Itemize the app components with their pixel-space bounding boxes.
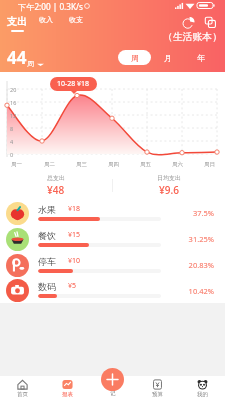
staticText: 总支出: [47, 174, 65, 182]
staticText: ¥18: [68, 204, 81, 214]
button[interactable]: 日均支出: [112, 174, 225, 197]
button[interactable]: 首页: [0, 376, 45, 400]
staticText: 10.42%: [177, 286, 214, 296]
button[interactable]: 收支: [69, 15, 83, 24]
staticText: 周: [27, 59, 34, 68]
staticText: 周三: [76, 161, 87, 168]
staticText: 水果: [38, 204, 56, 215]
staticText: 周一: [11, 161, 22, 168]
staticText: 报表: [62, 391, 73, 398]
staticText: ¥5: [68, 281, 77, 291]
button[interactable]: 餐饮: [0, 226, 225, 252]
staticText: 首页: [17, 391, 28, 398]
staticText: 周日: [204, 161, 215, 168]
button[interactable]: Add record: [101, 368, 124, 391]
staticText: 周: [131, 53, 139, 63]
staticText: 月: [164, 53, 172, 63]
staticText: 31.25%: [177, 234, 214, 244]
staticText: 0: [10, 151, 14, 158]
staticText: 44: [7, 46, 27, 69]
button[interactable]: 我的: [180, 376, 225, 400]
staticText: ¥10: [68, 256, 81, 266]
staticText: 下午2:00 | 0.3K/s: [18, 1, 83, 12]
staticText: 收支: [69, 15, 83, 24]
button[interactable]: 44: [7, 46, 44, 69]
button[interactable]: 记: [90, 376, 135, 400]
staticText: 20: [10, 86, 17, 93]
button[interactable]: Switch ledger: [204, 16, 217, 29]
staticText: 餐饮: [38, 230, 56, 241]
staticText: （生活账本）: [163, 31, 222, 43]
staticText: 周五: [140, 161, 151, 168]
staticText: 12: [10, 112, 17, 119]
staticText: 周六: [172, 161, 183, 168]
button[interactable]: 周: [118, 50, 151, 65]
staticText: 周四: [108, 161, 119, 168]
staticText: 10-28 ¥18: [57, 79, 90, 89]
staticText: ¥9.6: [159, 183, 179, 197]
button[interactable]: 停车: [0, 252, 225, 278]
button[interactable]: Statistics: [182, 16, 195, 29]
button[interactable]: 报表: [45, 376, 90, 400]
button[interactable]: 总支出: [0, 174, 112, 197]
staticText: 8: [10, 125, 14, 132]
button[interactable]: 水果: [0, 200, 225, 226]
staticText: 预算: [152, 391, 163, 398]
staticText: 日均支出: [157, 174, 181, 182]
staticText: 支出: [7, 15, 27, 28]
staticText: 年: [197, 53, 205, 63]
staticText: 数码: [38, 281, 56, 292]
staticText: ¥15: [68, 230, 81, 240]
button[interactable]: 支出: [7, 15, 27, 32]
button[interactable]: 月: [151, 50, 184, 65]
staticText: 37.5%: [177, 208, 214, 218]
button[interactable]: 数码: [0, 278, 225, 303]
staticText: 收入: [39, 15, 53, 24]
staticText: 4: [10, 138, 14, 145]
button[interactable]: 年: [184, 50, 217, 65]
staticText: 停车: [38, 256, 56, 267]
staticText: ¥48: [47, 183, 65, 197]
staticText: 16: [10, 99, 17, 106]
staticText: 20.83%: [177, 260, 214, 270]
staticText: 周二: [44, 161, 55, 168]
staticText: 记: [110, 390, 116, 397]
button[interactable]: 收入: [39, 15, 53, 24]
staticText: 我的: [197, 391, 208, 398]
button[interactable]: 预算: [135, 376, 180, 400]
